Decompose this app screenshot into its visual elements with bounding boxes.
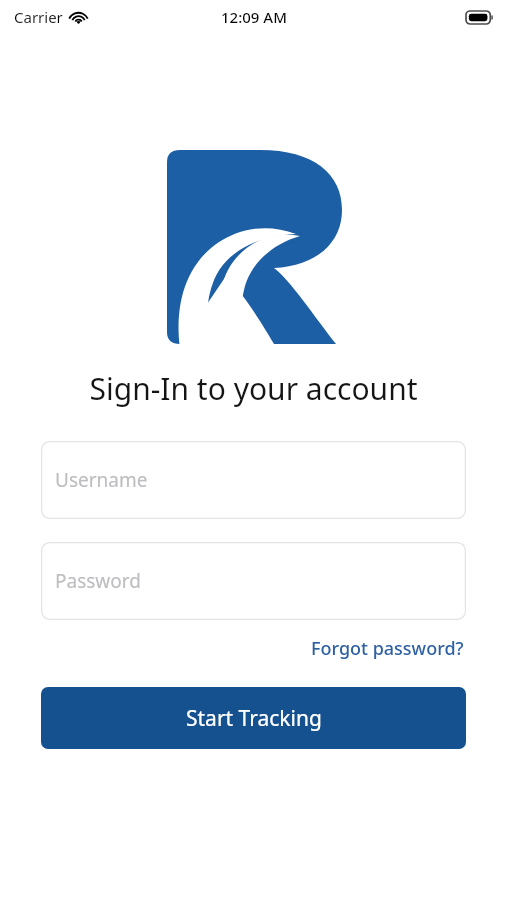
button[interactable]: Password bbox=[41, 542, 466, 620]
staticText: Sign-In to your account bbox=[89, 368, 418, 409]
staticText: Username bbox=[55, 467, 148, 493]
button[interactable]: Start Tracking bbox=[41, 687, 466, 749]
button[interactable]: Username bbox=[41, 441, 466, 519]
staticText: Start Tracking bbox=[186, 704, 322, 733]
staticText: Carrier bbox=[14, 7, 63, 27]
staticText: Forgot password? bbox=[311, 636, 464, 661]
staticText: 12:09 AM bbox=[221, 7, 287, 27]
staticText: Password bbox=[55, 568, 141, 594]
button[interactable]: Forgot password? bbox=[309, 632, 466, 665]
